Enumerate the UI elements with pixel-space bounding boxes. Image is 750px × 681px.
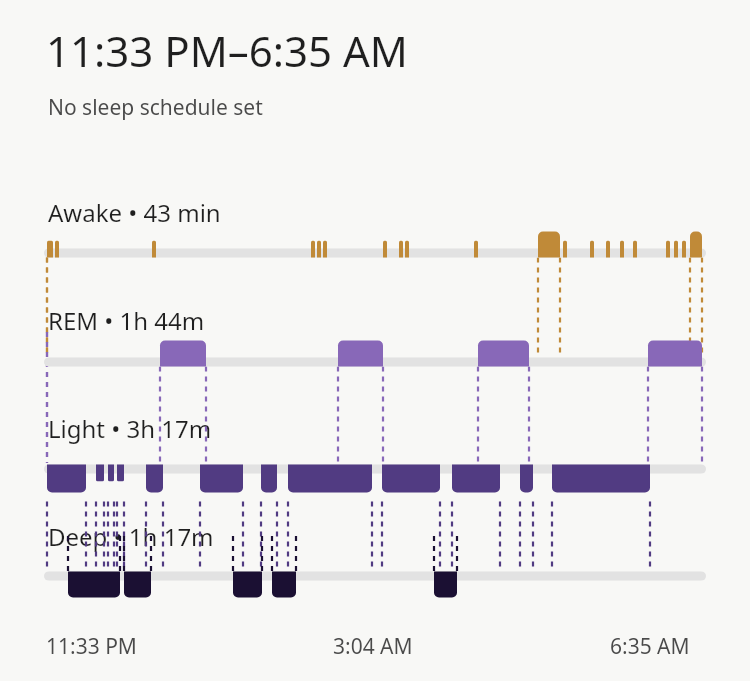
staticText: No sleep schedule set [48, 93, 263, 122]
staticText: 3:04 AM [333, 632, 413, 661]
staticText: REM • 1h 44m [48, 304, 205, 337]
button[interactable]: REM • 1h 44m [48, 304, 750, 337]
staticText: 11:33 PM [46, 632, 137, 661]
staticText: Deep • 1h 17m [48, 520, 214, 553]
button[interactable]: Light • 3h 17m [48, 412, 750, 445]
button[interactable]: 11:33 PM–6:35 AM [0, 0, 750, 681]
staticText: Light • 3h 17m [48, 412, 212, 445]
button[interactable]: Deep • 1h 17m [48, 520, 750, 553]
staticText: Awake • 43 min [48, 196, 221, 229]
staticText: 11:33 PM–6:35 AM [46, 22, 408, 79]
staticText: 6:35 AM [610, 632, 690, 661]
other: Sleep stages hypnogram [0, 0, 750, 681]
button[interactable]: Awake • 43 min [48, 196, 750, 229]
